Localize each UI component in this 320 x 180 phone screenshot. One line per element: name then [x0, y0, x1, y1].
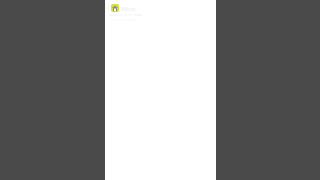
staticText: in your area now	[109, 12, 142, 18]
button[interactable]: Home	[111, 4, 119, 12]
staticText: Mintt	[121, 5, 136, 13]
button[interactable]: Home	[105, 0, 216, 24]
